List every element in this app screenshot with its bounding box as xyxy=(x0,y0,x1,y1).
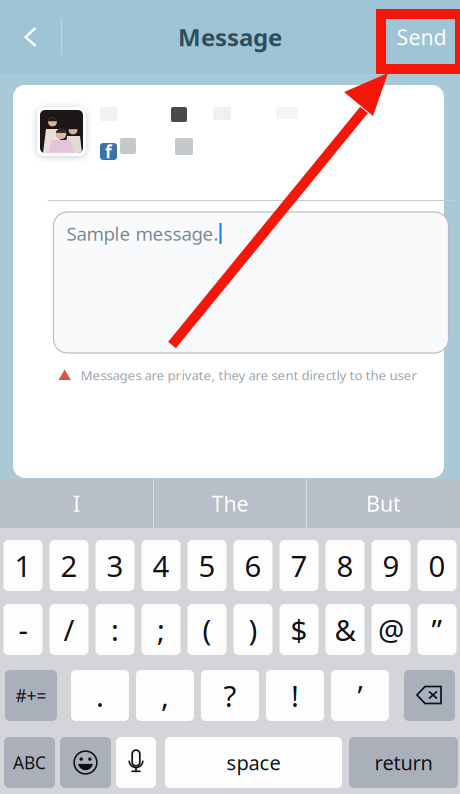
staticText: ; xyxy=(157,610,165,649)
button[interactable]: 5 xyxy=(187,540,226,591)
staticText: space xyxy=(226,749,280,776)
button[interactable]: return xyxy=(349,737,458,788)
button[interactable]: / xyxy=(49,604,88,655)
staticText: 2 xyxy=(60,546,77,585)
button[interactable]: ” xyxy=(417,604,456,655)
staticText: ) xyxy=(248,610,257,649)
staticText: 0 xyxy=(428,546,445,585)
button[interactable]: Back xyxy=(0,0,61,74)
button[interactable]: 9 xyxy=(371,540,410,591)
staticText: @ xyxy=(378,610,404,649)
button[interactable]: 4 xyxy=(141,540,180,591)
staticText: 4 xyxy=(152,546,169,585)
button[interactable]: Emoji keyboard xyxy=(60,737,111,788)
staticText: , xyxy=(161,676,169,715)
button[interactable]: ! xyxy=(266,670,324,721)
staticText: & xyxy=(334,610,355,649)
button[interactable]: 3 xyxy=(95,540,134,591)
button[interactable]: @ xyxy=(371,604,410,655)
staticText: return xyxy=(374,749,432,776)
button[interactable]: But xyxy=(307,479,460,528)
button[interactable]: 2 xyxy=(49,540,88,591)
button[interactable]: 8 xyxy=(325,540,364,591)
button[interactable]: 1 xyxy=(3,540,42,591)
staticText: / xyxy=(63,610,74,649)
button[interactable]: . xyxy=(71,670,129,721)
staticText: - xyxy=(18,610,27,649)
button[interactable]: - xyxy=(3,604,42,655)
staticText: ABC xyxy=(13,751,46,774)
staticText: 9 xyxy=(382,546,399,585)
button[interactable]: ? xyxy=(201,670,259,721)
button[interactable]: 7 xyxy=(279,540,318,591)
staticText: : xyxy=(111,610,119,649)
staticText: I xyxy=(73,489,80,518)
staticText: ? xyxy=(223,676,236,715)
button[interactable]: Delete xyxy=(404,670,455,721)
button[interactable]: #+= xyxy=(5,670,57,721)
staticText: 7 xyxy=(290,546,307,585)
button[interactable]: I xyxy=(0,479,153,528)
button[interactable]: Dictate xyxy=(116,737,156,788)
button[interactable]: ) xyxy=(233,604,272,655)
staticText: 3 xyxy=(106,546,123,585)
button[interactable]: 0 xyxy=(417,540,456,591)
staticText: ( xyxy=(202,610,211,649)
button[interactable]: ; xyxy=(141,604,180,655)
staticText: Sample message. xyxy=(66,221,218,246)
button[interactable]: Send xyxy=(383,0,460,74)
button[interactable]: 6 xyxy=(233,540,272,591)
button[interactable]: ( xyxy=(187,604,226,655)
staticText: f xyxy=(105,140,112,163)
staticText: ’ xyxy=(357,676,362,715)
staticText: 1 xyxy=(14,546,31,585)
staticText: Message xyxy=(178,21,282,53)
staticText: . xyxy=(96,676,104,715)
button[interactable]: : xyxy=(95,604,134,655)
staticText: Messages are private, they are sent dire… xyxy=(80,366,417,384)
button[interactable]: , xyxy=(136,670,194,721)
staticText: ! xyxy=(291,676,299,715)
staticText: Send xyxy=(396,23,446,51)
button[interactable]: $ xyxy=(279,604,318,655)
staticText: The xyxy=(211,489,248,518)
staticText: #+= xyxy=(15,684,46,707)
button[interactable]: & xyxy=(325,604,364,655)
staticText: 8 xyxy=(336,546,353,585)
staticText: $ xyxy=(290,610,307,649)
button[interactable]: ABC xyxy=(4,737,55,788)
staticText: But xyxy=(366,489,401,518)
button[interactable]: space xyxy=(165,737,342,788)
button[interactable]: ’ xyxy=(331,670,389,721)
staticText: 6 xyxy=(244,546,261,585)
staticText: ” xyxy=(431,610,442,649)
button[interactable]: The xyxy=(154,479,306,528)
staticText: 5 xyxy=(198,546,215,585)
